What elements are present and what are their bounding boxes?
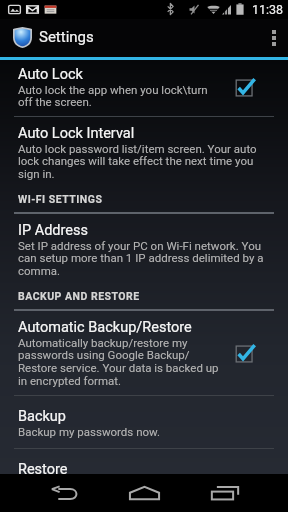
staticText: WI-FI SETTINGS [18, 193, 103, 205]
staticText: 11:38 [252, 2, 284, 17]
button[interactable]: More options [260, 19, 288, 57]
button[interactable]: Auto Lock [0, 60, 288, 116]
button[interactable]: Backup [0, 398, 288, 448]
button[interactable]: Home [104, 474, 184, 512]
button[interactable]: Back [24, 474, 104, 512]
staticText: Automatically backup/restore my password… [18, 336, 219, 388]
staticText: Auto lock the app when you lock\turn off… [18, 83, 219, 109]
staticText: IP Address [18, 222, 88, 239]
button[interactable]: Restore [0, 451, 288, 474]
staticText: Auto Lock [18, 66, 83, 83]
button[interactable]: Auto Lock Interval [0, 119, 288, 188]
button[interactable]: IP Address [0, 216, 288, 285]
staticText: Backup my passwords now. [18, 425, 161, 438]
button[interactable]: Automatic Backup/Restore [0, 313, 288, 395]
staticText: Auto lock password list/item screen. You… [18, 142, 274, 181]
button[interactable]: Recent apps [184, 474, 264, 512]
staticText: Auto Lock Interval [18, 125, 135, 142]
staticText: Restore [18, 461, 68, 474]
staticText: Settings [39, 28, 94, 46]
staticText: Automatic Backup/Restore [18, 319, 192, 336]
staticText: BACKUP AND RESTORE [18, 290, 140, 302]
staticText: Backup [18, 408, 66, 425]
staticText: Set IP address of your PC on Wi-Fi netwo… [18, 239, 274, 278]
